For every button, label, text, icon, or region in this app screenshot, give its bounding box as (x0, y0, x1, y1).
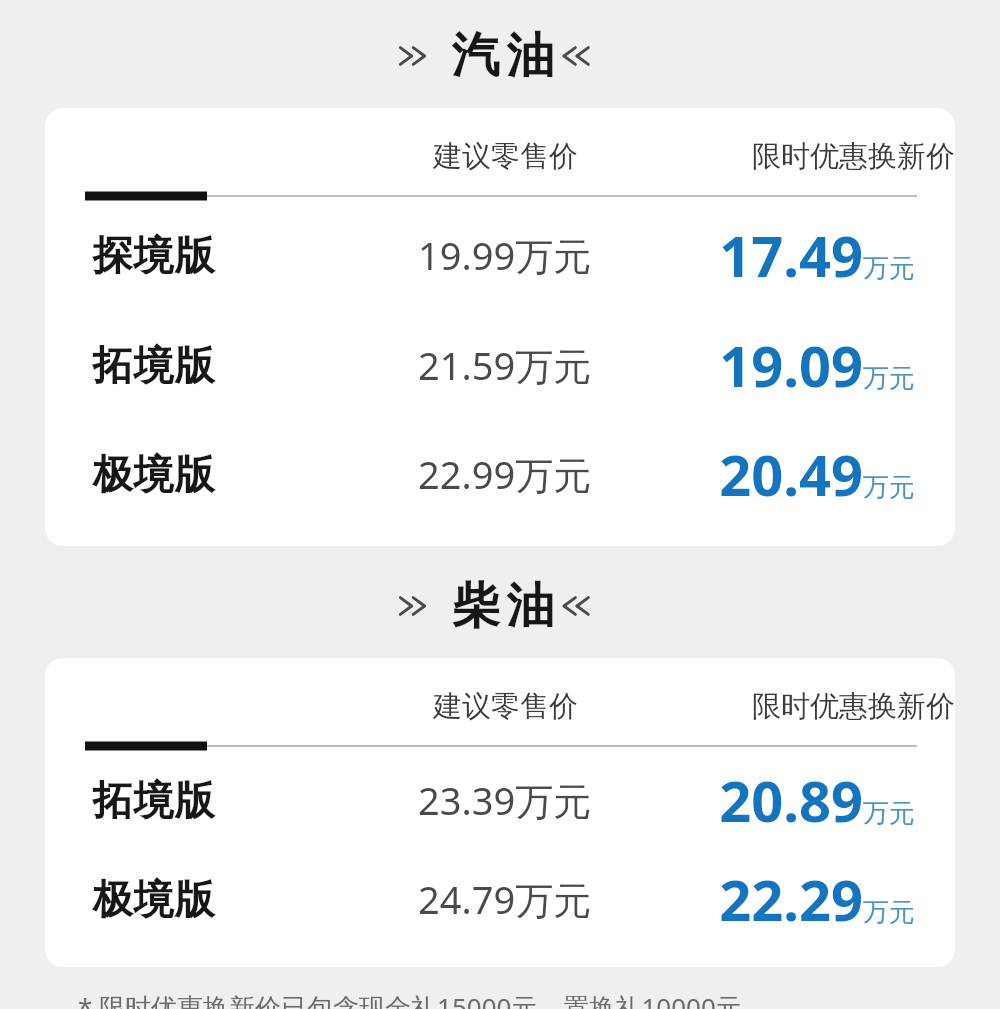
staticText: 19.99万元 (418, 229, 592, 281)
staticText: 极境版 (92, 449, 215, 499)
staticText: 限时优惠换新价 (752, 138, 955, 175)
button[interactable]: 探境版 (45, 200, 955, 310)
staticText: 限时优惠换新价 (752, 688, 955, 725)
button[interactable]: 极境版 (45, 849, 955, 949)
staticText: 24.79万元 (418, 873, 592, 925)
button[interactable]: 拓境版 (45, 310, 955, 419)
staticText: 20.89万元 (719, 762, 915, 838)
staticText: 拓境版 (92, 340, 215, 390)
staticText: 23.39万元 (418, 774, 592, 826)
staticText: 建议零售价 (433, 138, 578, 175)
staticText: 探境版 (92, 230, 215, 280)
staticText: 建议零售价 (433, 688, 578, 725)
staticText: 22.99万元 (418, 448, 592, 500)
staticText: 汽油 (448, 26, 558, 86)
staticText: 极境版 (92, 874, 215, 924)
staticText: 22.29万元 (719, 861, 915, 937)
staticText: 17.49万元 (719, 217, 915, 293)
staticText: 21.59万元 (418, 339, 592, 391)
staticText: * 限时优惠换新价已包含现金礼15000元、置换礼10000元 (78, 989, 742, 1009)
staticText: 19.09万元 (719, 327, 915, 403)
button[interactable]: 拓境版 (45, 750, 955, 849)
staticText: 柴油 (448, 576, 558, 636)
button[interactable]: 极境版 (45, 419, 955, 528)
staticText: 20.49万元 (719, 436, 915, 512)
staticText: 拓境版 (92, 775, 215, 825)
